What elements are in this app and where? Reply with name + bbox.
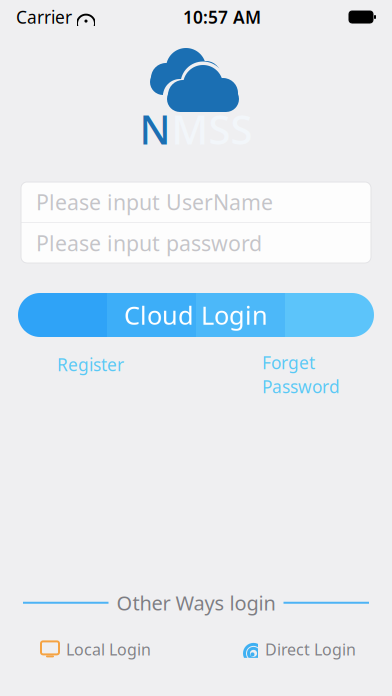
- staticText: Forget: [262, 351, 315, 374]
- staticText: Other Ways login: [116, 589, 275, 616]
- staticText: Please input password: [36, 229, 262, 257]
- staticText: Local Login: [66, 639, 151, 660]
- button[interactable]: Cloud Login: [0, 293, 392, 337]
- button[interactable]: Please input UserName: [21, 182, 371, 222]
- staticText: 10:57 AM: [183, 5, 261, 28]
- button[interactable]: Forget: [262, 349, 340, 400]
- button[interactable]: Please input password: [21, 223, 371, 263]
- staticText: Password: [262, 375, 340, 398]
- staticText: Please input UserName: [36, 188, 273, 216]
- button[interactable]: Local Login: [41, 635, 151, 664]
- staticText: Register: [57, 353, 124, 376]
- staticText: MSS: [171, 102, 252, 155]
- button[interactable]: Register: [57, 349, 124, 380]
- staticText: N: [139, 102, 170, 155]
- button[interactable]: Direct Login: [241, 635, 356, 664]
- staticText: Direct Login: [265, 639, 356, 660]
- staticText: Carrier: [16, 5, 72, 28]
- staticText: Cloud Login: [124, 298, 268, 332]
